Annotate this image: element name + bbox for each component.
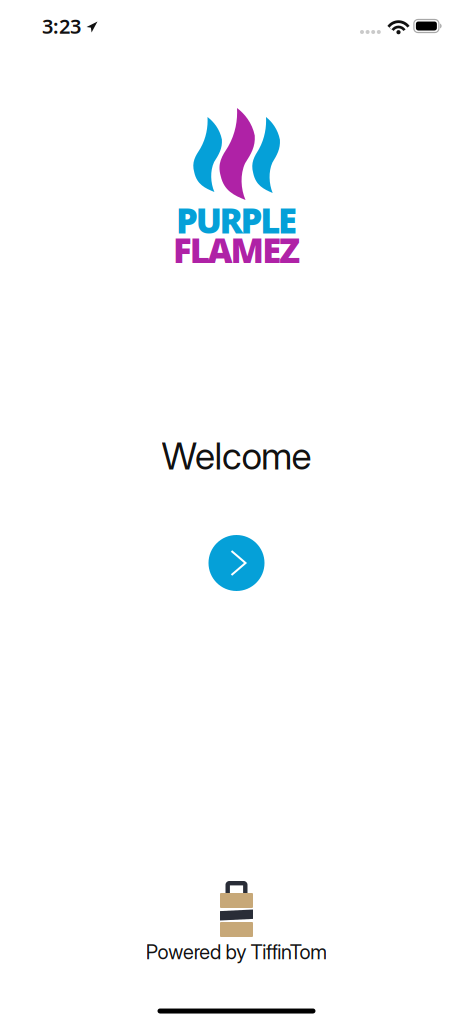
button[interactable]: Continue bbox=[208, 535, 264, 591]
staticText: 3:23 bbox=[42, 12, 81, 40]
staticText: Powered by TiffinTom bbox=[146, 940, 327, 964]
staticText: PURPLE bbox=[176, 196, 297, 244]
staticText: FLAMEZ bbox=[173, 226, 300, 274]
staticText: Welcome bbox=[161, 433, 311, 479]
